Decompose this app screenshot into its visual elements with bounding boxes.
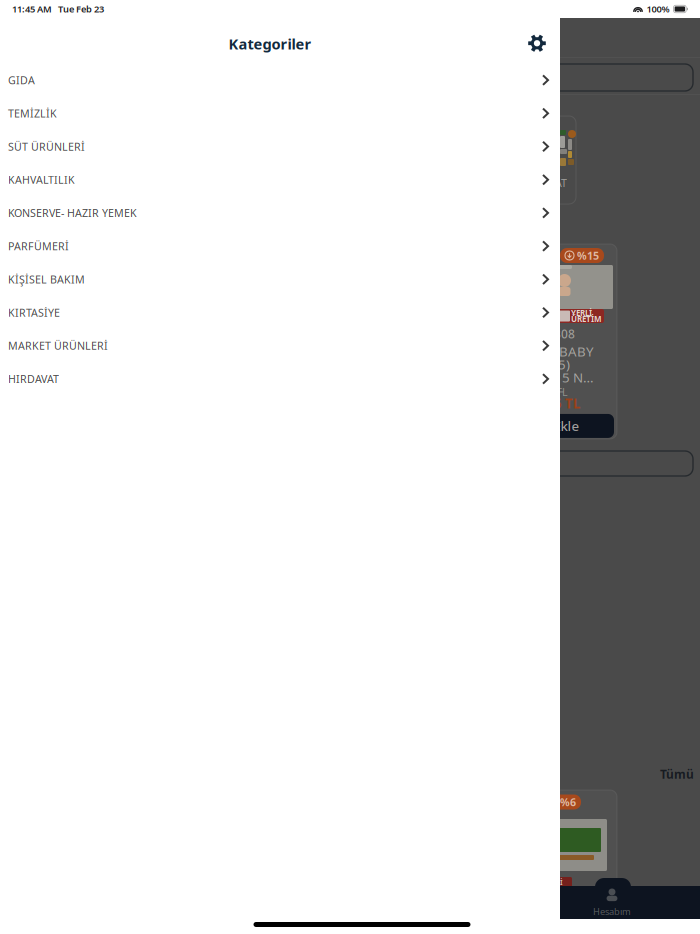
button[interactable]: MARKET ÜRÜNLERİ (0, 329, 560, 362)
button[interactable]: HIRDAVAT (0, 362, 560, 395)
staticText: 14 (535, 317, 545, 328)
button[interactable]: Hesabım (584, 878, 640, 919)
staticText: KONSERVE- HAZIR YEMEK (8, 206, 137, 220)
button[interactable]: GIDA (0, 63, 560, 97)
staticText: %6 (560, 795, 576, 809)
staticText: ZMO BABY (526, 343, 594, 360)
button[interactable]: Tümü (660, 766, 694, 782)
staticText: Tue Feb 23 (58, 3, 104, 15)
button[interactable]: Ekle (519, 414, 614, 438)
staticText: HIRDAVAT (8, 372, 59, 386)
staticText: …AT (547, 176, 567, 190)
staticText: Hesabım (593, 905, 631, 918)
staticText: KAHVALTILIK (8, 173, 75, 187)
button[interactable]: KONSERVE- HAZIR YEMEK (0, 196, 560, 229)
staticText: Tümü (660, 766, 694, 782)
staticText: 100% (646, 3, 669, 15)
staticText: 17,95 TL (526, 395, 580, 412)
button[interactable]: SÜT ÜRÜNLERİ (0, 130, 560, 163)
button[interactable]: TEMİZLİK (0, 97, 560, 130)
staticText: PARFÜMERİ (8, 239, 69, 253)
button[interactable]: KIRTASİYE (0, 296, 560, 329)
staticText: NİOR 5 N… (526, 369, 594, 386)
button[interactable]: KAHVALTILIK (0, 163, 560, 196)
staticText: GIDA (8, 73, 35, 87)
staticText: Kategoriler (228, 34, 311, 53)
staticText: KIRTASİYE (8, 305, 60, 320)
staticText: 21,12 TL (526, 385, 568, 399)
button[interactable]: KİŞİSEL BAKIM (0, 263, 560, 296)
staticText: 11:45 AM (12, 3, 52, 15)
staticText: gizmo (520, 273, 556, 308)
staticText: YERLİ (571, 308, 592, 318)
button[interactable]: Settings (523, 28, 551, 58)
button[interactable]: PARFÜMERİ (0, 229, 560, 263)
staticText: YERLİ ÜRETİM (544, 878, 570, 896)
staticText: Ekle (553, 417, 579, 435)
staticText: MARKET ÜRÜNLERİ (8, 339, 108, 353)
staticText: ST07308 (526, 326, 575, 342)
staticText: SÜT ÜRÜNLERİ (8, 139, 85, 154)
staticText: ÜRETİM (571, 314, 602, 324)
staticText: (11-25) (526, 356, 570, 373)
staticText: TEMİZLİK (8, 106, 57, 120)
staticText: %15 (577, 248, 599, 263)
staticText: KİŞİSEL BAKIM (8, 272, 85, 286)
